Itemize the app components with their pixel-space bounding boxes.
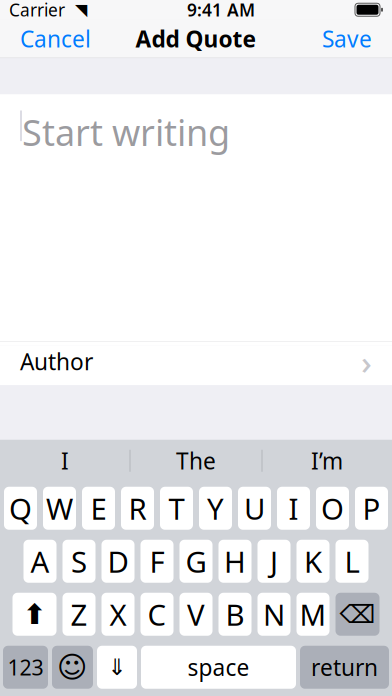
staticText: F — [149, 542, 164, 581]
button[interactable]: Shift — [12, 593, 56, 636]
staticText: I — [288, 489, 298, 528]
staticText: C — [147, 595, 166, 634]
button[interactable]: Delete — [335, 593, 379, 636]
staticText: 123 — [7, 653, 43, 681]
button[interactable]: Author — [0, 345, 392, 385]
staticText: R — [128, 489, 146, 528]
button[interactable]: Z — [62, 593, 95, 636]
staticText: ⬆ — [23, 598, 46, 630]
button[interactable]: Q — [4, 487, 37, 530]
staticText: return — [311, 652, 378, 682]
button[interactable]: D — [101, 540, 134, 583]
button[interactable]: U — [238, 487, 271, 530]
staticText: ⇓ — [107, 654, 126, 680]
staticText: G — [185, 542, 206, 581]
staticText: N — [263, 595, 285, 634]
staticText: 9:41 AM — [187, 0, 255, 21]
staticText: Carrier — [9, 0, 65, 21]
button[interactable]: P — [355, 487, 388, 530]
staticText: ◥ — [75, 1, 87, 19]
staticText: Start writing — [22, 108, 230, 156]
staticText: Save — [322, 24, 372, 54]
button[interactable]: 123 — [3, 646, 48, 689]
button[interactable]: Emoji — [52, 646, 93, 689]
button[interactable]: The — [130, 440, 261, 482]
button[interactable]: M — [296, 593, 329, 636]
button[interactable]: K — [296, 540, 329, 583]
staticText: Author — [20, 346, 93, 376]
staticText: S — [71, 542, 87, 581]
staticText: O — [321, 489, 344, 528]
button[interactable]: A — [23, 540, 56, 583]
staticText: A — [30, 542, 49, 581]
button[interactable]: I’m — [262, 440, 391, 482]
staticText: V — [187, 595, 205, 634]
staticText: D — [107, 542, 128, 581]
button[interactable]: S — [62, 540, 95, 583]
button[interactable]: E — [82, 487, 115, 530]
staticText: ⌫ — [339, 600, 375, 629]
staticText: B — [225, 595, 244, 634]
staticText: W — [46, 489, 73, 528]
staticText: X — [109, 595, 126, 634]
button[interactable]: R — [121, 487, 154, 530]
button[interactable]: O — [316, 487, 349, 530]
staticText: J — [270, 542, 278, 581]
staticText: I — [61, 446, 69, 476]
staticText: H — [224, 542, 246, 581]
button[interactable]: T — [160, 487, 193, 530]
staticText: K — [304, 542, 322, 581]
staticText: The — [176, 446, 216, 476]
button[interactable]: W — [43, 487, 76, 530]
button[interactable]: Y — [199, 487, 232, 530]
staticText: M — [299, 595, 326, 634]
staticText: Cancel — [20, 24, 91, 54]
staticText: Z — [70, 595, 87, 634]
staticText: L — [344, 542, 359, 581]
button[interactable]: X — [101, 593, 134, 636]
button[interactable]: Cancel — [8, 20, 103, 58]
button[interactable]: G — [179, 540, 212, 583]
staticText: U — [244, 489, 265, 528]
button[interactable]: space — [141, 646, 296, 689]
staticText: › — [361, 339, 372, 384]
button[interactable]: I — [277, 487, 310, 530]
button[interactable]: V — [179, 593, 212, 636]
button[interactable]: C — [140, 593, 173, 636]
button[interactable]: J — [257, 540, 290, 583]
button[interactable]: H — [218, 540, 251, 583]
button[interactable]: F — [140, 540, 173, 583]
button[interactable]: Dictation — [97, 646, 137, 689]
button[interactable]: N — [257, 593, 290, 636]
button[interactable]: L — [335, 540, 368, 583]
button[interactable]: return — [300, 646, 389, 689]
staticText: Add Quote — [135, 24, 256, 54]
button[interactable]: I — [0, 440, 129, 482]
staticText: ☺ — [57, 651, 88, 684]
staticText: space — [187, 652, 249, 682]
button[interactable]: Save — [310, 20, 384, 58]
staticText: P — [362, 489, 380, 528]
button[interactable]: B — [218, 593, 251, 636]
staticText: Y — [207, 489, 224, 528]
staticText: T — [168, 489, 184, 528]
staticText: I’m — [311, 446, 343, 476]
staticText: E — [90, 489, 106, 528]
staticText: Q — [9, 489, 32, 528]
